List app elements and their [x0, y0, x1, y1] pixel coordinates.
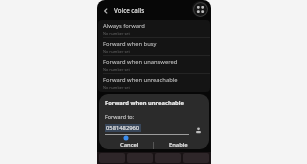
- button[interactable]: Pick contact: [193, 125, 203, 135]
- staticText: No number set: [103, 85, 130, 90]
- staticText: Forward when unreachable: [103, 76, 178, 84]
- staticText: Cancel: [120, 141, 139, 149]
- staticText: No number set: [103, 31, 130, 36]
- staticText: Forward to:: [105, 113, 135, 120]
- staticText: Always forward: [103, 22, 145, 30]
- button[interactable]: Cancel: [105, 141, 153, 149]
- staticText: No number set: [103, 67, 130, 72]
- staticText: No number set: [103, 49, 130, 54]
- button[interactable]: App grid: [192, 1, 208, 17]
- staticText: Voice calls: [114, 6, 145, 14]
- button[interactable]: Always forward: [98, 20, 210, 37]
- button[interactable]: Forward when unreachable: [98, 74, 210, 91]
- staticText: Forward when unreachable: [105, 99, 184, 107]
- staticText: Forward when busy: [103, 40, 157, 48]
- staticText: 0581482960: [106, 124, 140, 132]
- button[interactable]: Back: [100, 5, 111, 16]
- button[interactable]: Enable: [154, 141, 203, 149]
- staticText: Forward when unanswered: [103, 58, 178, 66]
- staticText: Enable: [169, 141, 188, 149]
- button[interactable]: Forward when busy: [98, 38, 210, 55]
- button[interactable]: Forward when unanswered: [98, 56, 210, 73]
